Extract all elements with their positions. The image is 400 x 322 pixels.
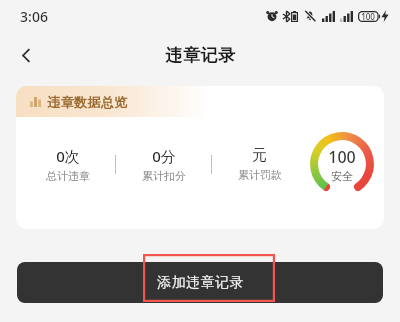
staticText: 0分 [152, 146, 176, 166]
staticText: 累计扣分 [142, 169, 186, 183]
button[interactable]: 添加违章记录 [17, 262, 383, 303]
staticText: 添加违章记录 [157, 274, 244, 292]
staticText: 违章记录 [165, 45, 236, 66]
staticText: 总计违章 [46, 169, 90, 183]
staticText: 元 [252, 146, 267, 165]
staticText: 违章数据总览 [47, 94, 128, 110]
staticText: 安全 [331, 169, 353, 183]
button[interactable]: 0次 [20, 146, 115, 183]
staticText: 累计罚款 [238, 168, 282, 182]
staticText: 100 [361, 11, 375, 22]
button[interactable]: Back [6, 35, 46, 75]
staticText: 100 [328, 146, 356, 168]
staticText: 3:06 [20, 7, 48, 26]
staticText: 0次 [56, 146, 80, 166]
button[interactable]: 0分 [116, 146, 211, 183]
button[interactable]: 元 [212, 146, 307, 182]
